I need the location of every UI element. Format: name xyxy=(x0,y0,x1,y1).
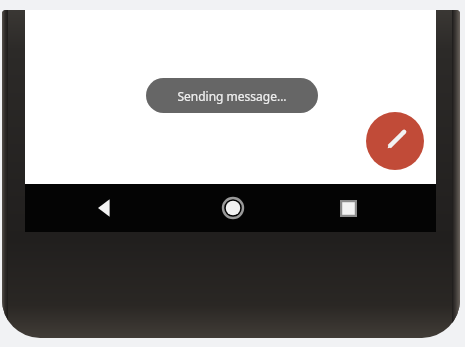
button[interactable]: Compose message xyxy=(366,112,424,170)
button[interactable]: Sending message... xyxy=(146,78,318,113)
staticText: Sending message... xyxy=(177,88,287,104)
button[interactable]: Home xyxy=(217,192,249,224)
button[interactable]: Back xyxy=(89,193,119,223)
button[interactable]: Recent apps xyxy=(333,193,363,223)
